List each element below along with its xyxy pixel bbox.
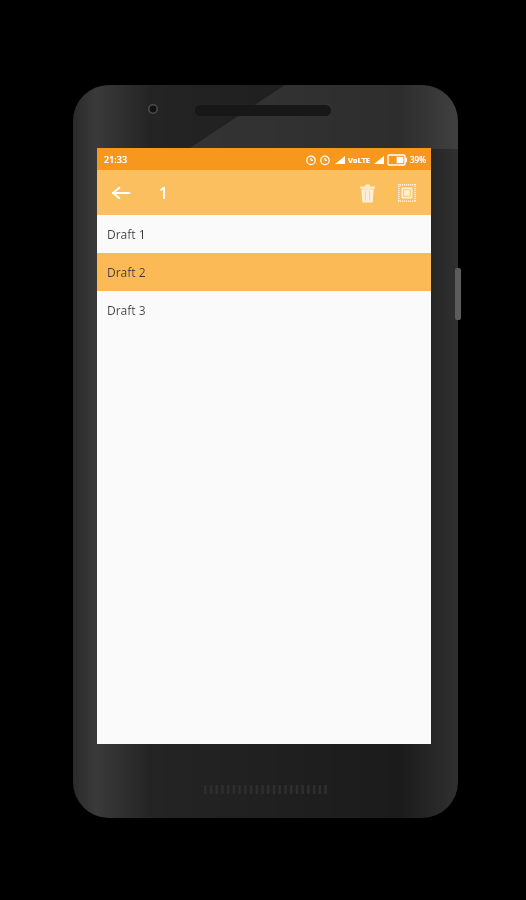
- button[interactable]: Draft 3: [97, 291, 431, 329]
- staticText: 21:33: [104, 153, 128, 165]
- staticText: Draft 1: [107, 226, 146, 242]
- button[interactable]: Draft 2: [97, 253, 431, 291]
- button[interactable]: Draft 1: [97, 215, 431, 253]
- button[interactable]: Delete: [347, 173, 387, 213]
- button[interactable]: Navigate up: [101, 173, 141, 213]
- staticText: Draft 2: [107, 264, 146, 280]
- staticText: VoLTE: [348, 155, 370, 165]
- staticText: Draft 3: [107, 302, 146, 318]
- staticText: 1: [159, 182, 169, 204]
- staticText: 39%: [410, 154, 426, 165]
- button[interactable]: Select all: [387, 173, 427, 213]
